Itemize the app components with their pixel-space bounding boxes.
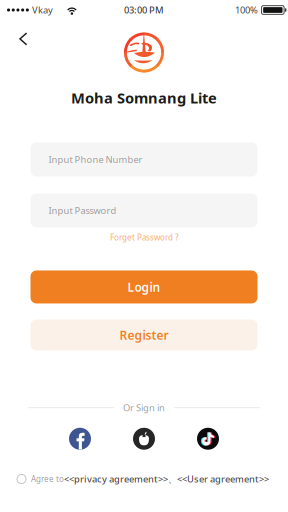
staticText: Input Password <box>48 204 116 217</box>
staticText: Vkay <box>32 4 53 16</box>
button[interactable]: Sign in with Apple <box>133 428 155 450</box>
staticText: Forget Password ? <box>110 232 178 243</box>
button[interactable]: Register <box>30 319 257 350</box>
staticText: Input Phone Number <box>48 153 142 166</box>
staticText: Moha Somnang Lite <box>71 88 217 107</box>
button[interactable]: Login <box>30 270 257 303</box>
staticText: Or Sign in <box>123 401 165 414</box>
staticText: 03:00 PM <box>124 4 164 16</box>
button[interactable]: Forget Password ? <box>110 227 178 244</box>
staticText: <<privacy agreement>>、<<User agreement>> <box>64 473 269 485</box>
button[interactable]: Sign in with Facebook <box>69 428 91 450</box>
button[interactable]: Agree to terms <box>17 474 26 483</box>
button[interactable]: Sign in with TikTok <box>197 428 219 450</box>
staticText: 100% <box>235 4 258 16</box>
staticText: Agree to <box>31 474 64 484</box>
staticText: Login <box>127 279 160 295</box>
staticText: Register <box>119 327 168 343</box>
button[interactable]: Input Password <box>30 193 257 227</box>
button[interactable]: Input Phone Number <box>30 142 257 176</box>
button[interactable]: Back <box>0 20 42 58</box>
button[interactable]: <<privacy agreement>>、<<User agreement>> <box>64 473 269 485</box>
